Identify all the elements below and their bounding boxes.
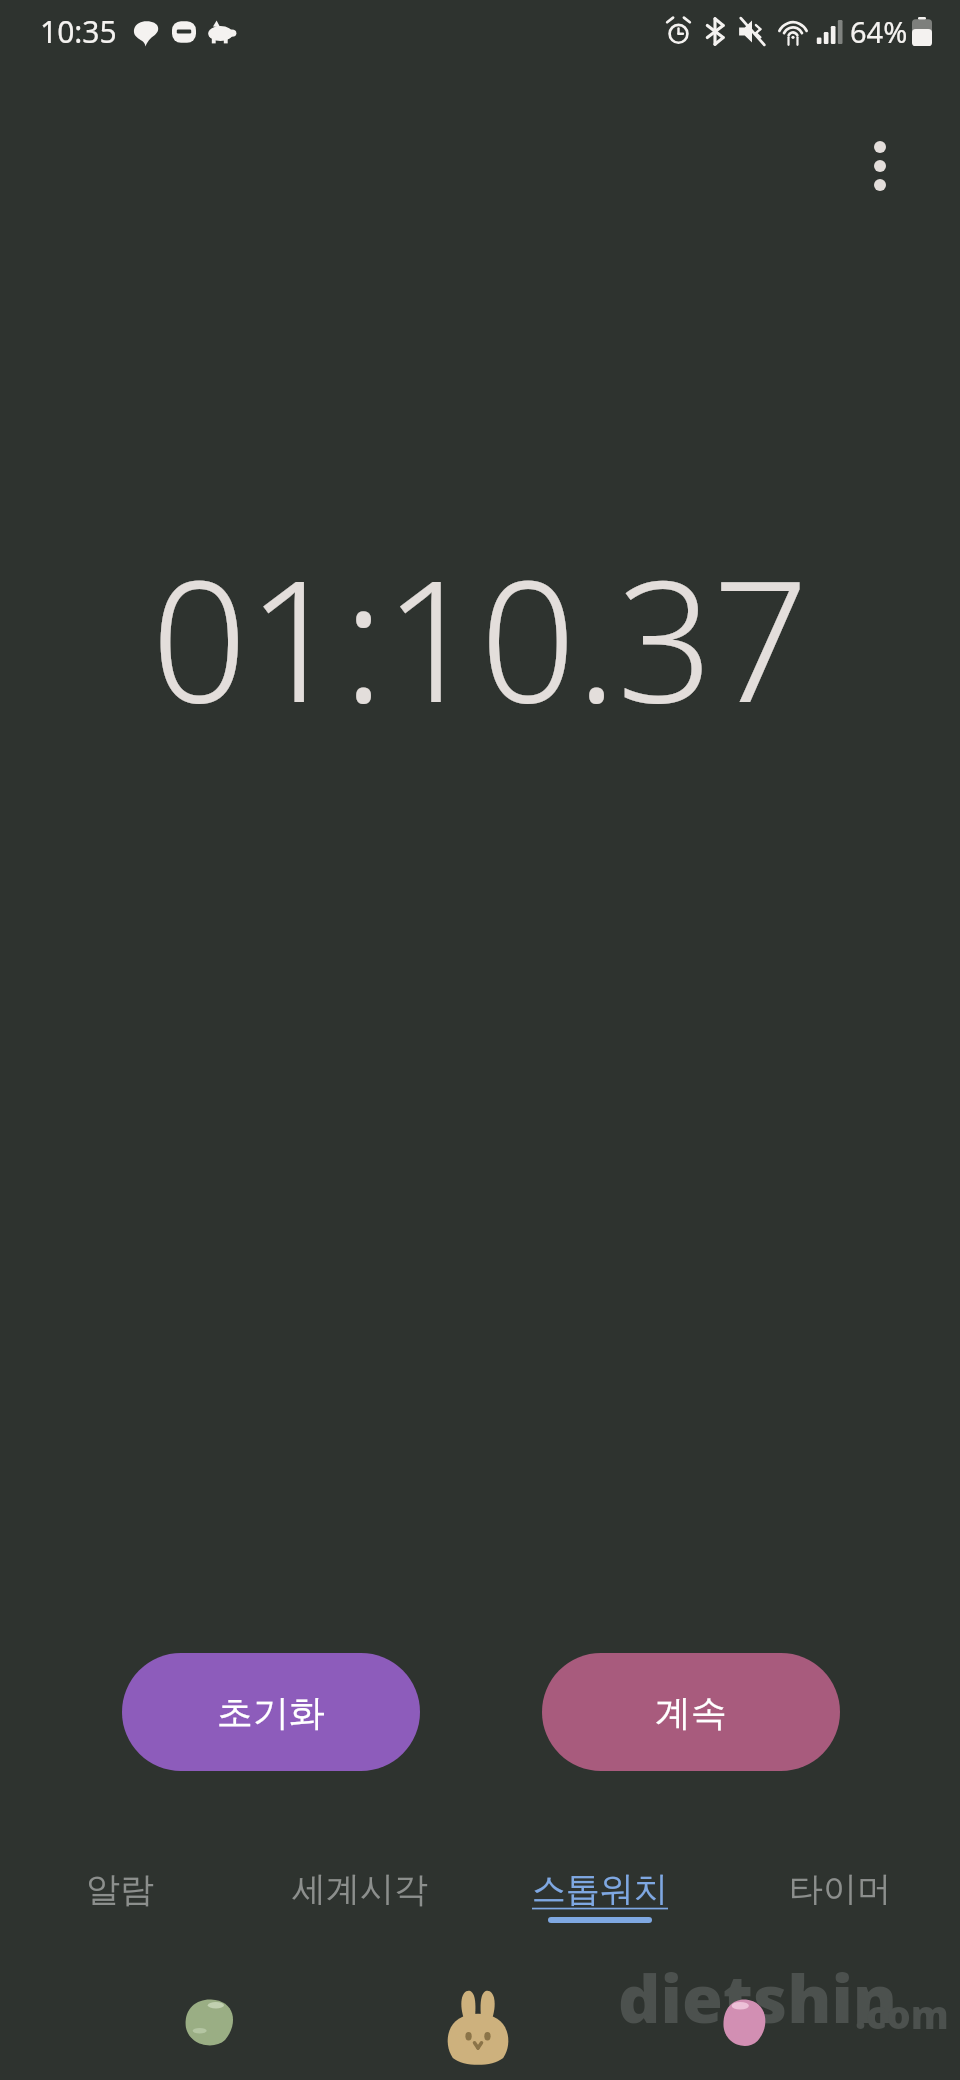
staticText: 알람 [86, 1868, 154, 1911]
staticText: 10:35 [40, 11, 117, 52]
staticText: 계속 [655, 1690, 727, 1735]
button[interactable]: 스톱워치 [480, 1868, 720, 1948]
staticText: 01:10.37 [151, 522, 809, 751]
staticText: dietshin [618, 1952, 898, 2042]
button[interactable]: 세계시각 [240, 1868, 480, 1948]
button[interactable]: 계속 [542, 1653, 840, 1771]
staticText: .com [855, 1988, 949, 2040]
staticText: 64% [850, 12, 908, 51]
button[interactable]: 초기화 [122, 1653, 420, 1771]
staticText: 타이머 [789, 1868, 891, 1911]
button[interactable]: 알람 [0, 1868, 240, 1948]
button[interactable]: More options [833, 118, 927, 214]
staticText: 초기화 [217, 1690, 325, 1735]
staticText: 세계시각 [292, 1868, 428, 1911]
button[interactable]: 타이머 [720, 1868, 960, 1948]
staticText: 스톱워치 [532, 1868, 668, 1911]
